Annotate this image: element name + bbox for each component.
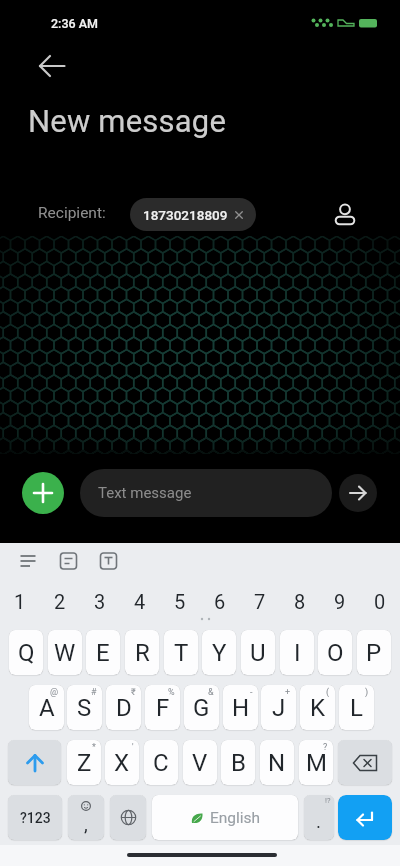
button[interactable]: P (357, 630, 391, 675)
button[interactable] (338, 795, 392, 840)
button[interactable]: U (241, 630, 275, 675)
staticText: English (210, 809, 261, 827)
button[interactable]: F (145, 685, 180, 730)
button[interactable]: A (29, 685, 64, 730)
button[interactable]: M (299, 740, 333, 785)
staticText: Recipient: (38, 204, 106, 222)
button[interactable]: L (339, 685, 374, 730)
staticText: 2 (54, 590, 66, 613)
button[interactable]: K (300, 685, 335, 730)
staticText: 8 (294, 590, 306, 613)
button[interactable]: Y (202, 630, 236, 675)
button[interactable]: C (144, 740, 178, 785)
button[interactable]: 7 (240, 576, 280, 626)
button[interactable]: 9 (320, 576, 360, 626)
staticText: U (250, 639, 266, 667)
staticText: 4 (134, 590, 146, 613)
staticText: E (96, 639, 110, 667)
button[interactable] (22, 472, 64, 514)
button[interactable] (8, 740, 61, 785)
staticText: M (306, 749, 327, 777)
staticText: 0 (374, 590, 386, 613)
staticText: C (153, 749, 169, 777)
staticText: Text message (98, 484, 192, 502)
button[interactable]: 3 (80, 576, 120, 626)
staticText: @ (50, 687, 59, 698)
button[interactable]: O (318, 630, 352, 675)
button[interactable]: 18730218809 (130, 198, 256, 231)
button[interactable]: G (184, 685, 219, 730)
button[interactable]: J (261, 685, 296, 730)
button[interactable]: 4 (120, 576, 160, 626)
staticText: T (174, 639, 189, 667)
staticText: & (208, 687, 214, 698)
button[interactable]: H (223, 685, 258, 730)
button[interactable]: I (280, 630, 314, 675)
staticText: B (231, 749, 246, 777)
button[interactable] (30, 44, 74, 88)
staticText: , (84, 813, 88, 835)
button[interactable]: V (183, 740, 217, 785)
staticText: # (91, 687, 97, 698)
staticText: S (77, 694, 92, 722)
staticText: 1 (14, 590, 26, 613)
button[interactable]: S (67, 685, 102, 730)
staticText: Z (77, 749, 92, 777)
staticText: G (193, 694, 210, 722)
button[interactable]: Text message (80, 469, 332, 517)
button[interactable]: 2 (40, 576, 80, 626)
button[interactable]: ?123 (8, 795, 62, 840)
staticText: ) (365, 687, 369, 698)
staticText: 5 (174, 590, 186, 613)
button[interactable]: D (106, 685, 141, 730)
button[interactable]: W (48, 630, 82, 675)
staticText: !? (325, 796, 331, 805)
button[interactable] (338, 740, 392, 785)
staticText: D (116, 694, 132, 722)
button[interactable]: X (105, 740, 139, 785)
button[interactable]: 0 (360, 576, 400, 626)
button[interactable] (323, 192, 367, 236)
button[interactable]: Z (67, 740, 101, 785)
staticText: ( (326, 687, 330, 698)
staticText: V (192, 749, 208, 777)
button[interactable]: English (152, 795, 298, 840)
staticText: H (232, 694, 250, 722)
staticText: P (366, 639, 382, 667)
staticText: ?123 (20, 810, 51, 826)
button[interactable]: Q (9, 630, 43, 675)
button[interactable]: 6 (200, 576, 240, 626)
staticText: F (156, 694, 170, 722)
button[interactable]: N (260, 740, 294, 785)
staticText: . (316, 810, 322, 832)
staticText: 9 (334, 590, 346, 613)
button[interactable]: . (304, 795, 334, 840)
staticText: Q (18, 639, 35, 667)
staticText: 7 (254, 590, 266, 613)
staticText: ' (132, 742, 134, 753)
button[interactable]: R (125, 630, 159, 675)
button[interactable]: T (164, 630, 198, 675)
staticText: 18730218809 (143, 207, 228, 223)
button[interactable]: 8 (280, 576, 320, 626)
staticText: L (350, 694, 363, 722)
button[interactable]: , (68, 795, 104, 840)
button[interactable]: 5 (160, 576, 200, 626)
staticText: R (135, 639, 150, 667)
staticText: 3 (94, 590, 106, 613)
button[interactable]: 1 (0, 576, 40, 626)
staticText: J (272, 694, 286, 722)
staticText: N (268, 749, 286, 777)
staticText: 6 (214, 590, 226, 613)
staticText: O (327, 639, 344, 667)
staticText: ₹ (131, 687, 136, 698)
staticText: Y (212, 639, 227, 667)
button[interactable] (339, 474, 377, 512)
staticText: X (114, 749, 130, 777)
staticText: New message (28, 103, 227, 139)
button[interactable] (110, 795, 146, 840)
button[interactable]: B (221, 740, 255, 785)
button[interactable]: E (86, 630, 120, 675)
staticText: * (92, 742, 96, 753)
staticText: I (294, 639, 301, 667)
